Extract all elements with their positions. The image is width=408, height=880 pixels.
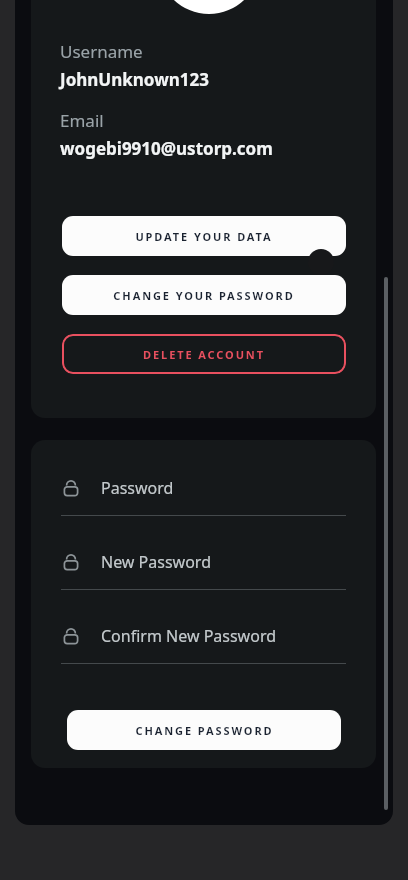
button[interactable]: DELETE ACCOUNT bbox=[62, 334, 346, 374]
other: Password lock bbox=[61, 478, 81, 498]
staticText: Username bbox=[60, 40, 143, 63]
staticText: CHANGE YOUR PASSWORD bbox=[113, 288, 295, 303]
staticText: Confirm New Password bbox=[101, 625, 277, 647]
button[interactable]: Password lock bbox=[61, 540, 346, 614]
staticText: Password bbox=[101, 477, 174, 499]
staticText: wogebi9910@ustorp.com bbox=[60, 137, 273, 160]
staticText: CHANGE PASSWORD bbox=[135, 723, 274, 738]
other: Password lock bbox=[61, 552, 81, 572]
staticText: UPDATE YOUR DATA bbox=[135, 229, 273, 244]
button[interactable]: Password lock bbox=[61, 466, 346, 540]
staticText: New Password bbox=[101, 551, 211, 573]
staticText: JohnUnknown123 bbox=[60, 68, 209, 91]
button[interactable]: UPDATE YOUR DATA bbox=[62, 216, 346, 256]
button[interactable]: CHANGE YOUR PASSWORD bbox=[62, 275, 346, 315]
staticText: DELETE ACCOUNT bbox=[143, 347, 265, 362]
button[interactable]: Password lock bbox=[61, 614, 346, 688]
other: Password lock bbox=[61, 626, 81, 646]
staticText: Email bbox=[60, 109, 104, 132]
button[interactable]: CHANGE PASSWORD bbox=[67, 710, 341, 750]
